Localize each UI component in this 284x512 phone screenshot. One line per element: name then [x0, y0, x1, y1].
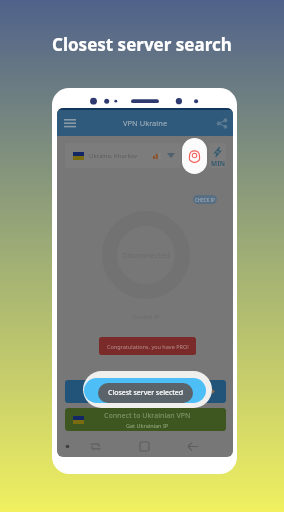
- staticText: VPN Ukraine: [123, 118, 168, 128]
- button[interactable]: Congratulations, you have PRO!: [99, 337, 196, 355]
- button[interactable]: Closest server selected: [98, 383, 193, 403]
- button[interactable]: Connect to Ukrainian VPN: [65, 408, 226, 431]
- staticText: MIN: [211, 159, 225, 168]
- staticText: Closest server search: [52, 33, 232, 56]
- button[interactable]: Find closest server: [182, 138, 207, 174]
- button[interactable]: [65, 380, 226, 403]
- staticText: Closest server selected: [108, 388, 184, 398]
- staticText: Ukraine, Kharkov: [89, 152, 138, 160]
- button[interactable]: Menu: [61, 114, 79, 132]
- button[interactable]: Ukraine, Kharkov: [65, 143, 181, 168]
- staticText: Disconnected: [122, 250, 170, 260]
- staticText: Connect to Ukrainian VPN: [104, 411, 191, 421]
- button[interactable]: MIN: [209, 143, 226, 168]
- button[interactable]: Share: [214, 115, 230, 131]
- staticText: Congratulations, you have PRO!: [107, 343, 189, 350]
- staticText: CHECK IP: [195, 197, 215, 203]
- staticText: Get Ukrainian IP: [126, 422, 169, 429]
- button[interactable]: CHECK IP: [193, 195, 217, 204]
